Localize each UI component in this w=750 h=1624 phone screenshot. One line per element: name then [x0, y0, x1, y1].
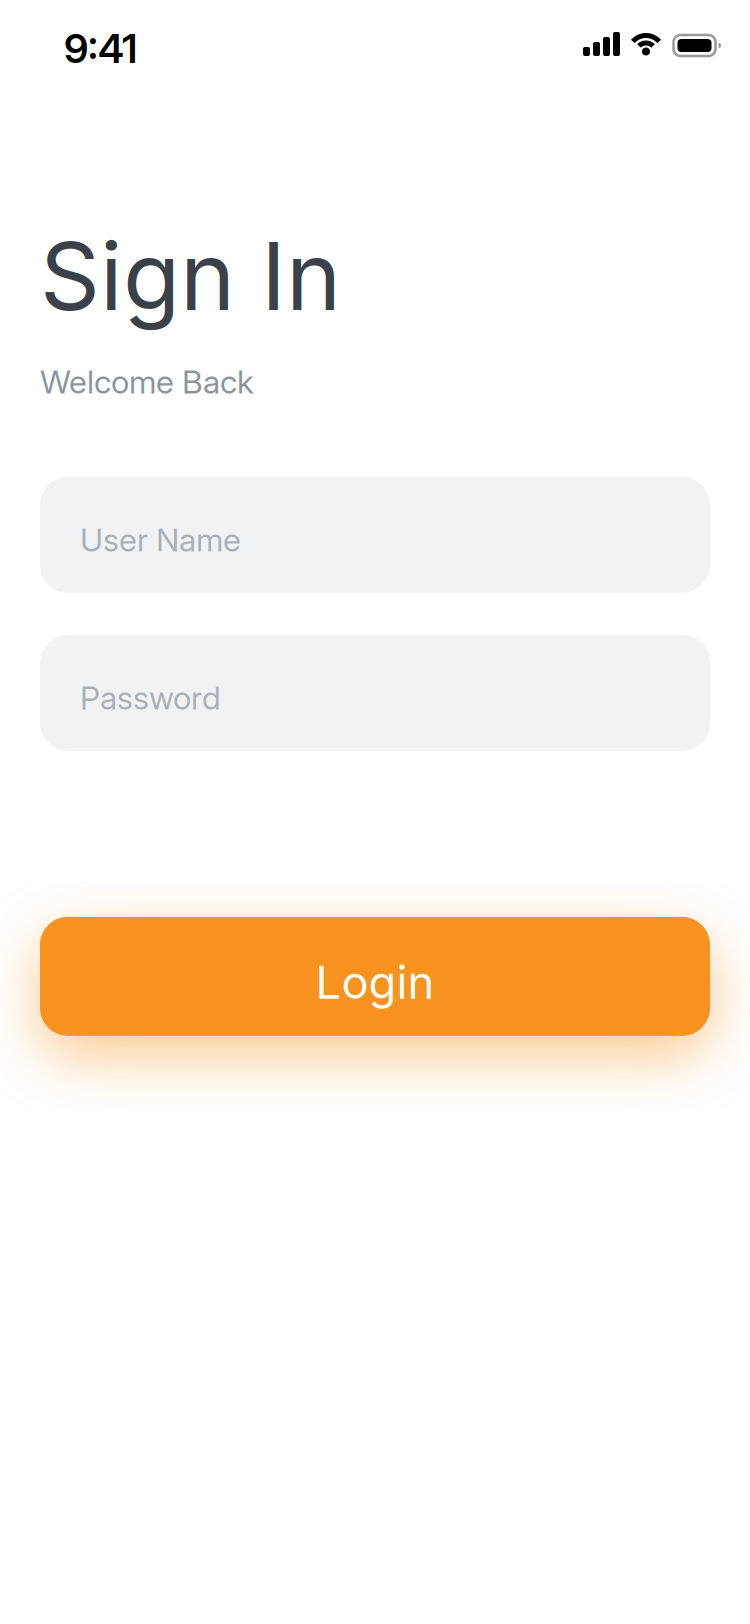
staticText: 9:41 [64, 25, 137, 72]
staticText: Password [80, 679, 221, 717]
staticText: Welcome Back [40, 363, 254, 401]
button[interactable]: Password [40, 635, 710, 751]
button[interactable]: Login [40, 917, 710, 1036]
staticText: Login [315, 956, 434, 1009]
staticText: Sign In [40, 221, 341, 331]
staticText: User Name [80, 521, 241, 559]
button[interactable]: User Name [40, 477, 710, 593]
